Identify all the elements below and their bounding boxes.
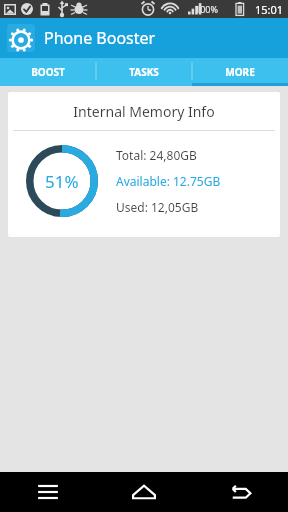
staticText: BOOST — [31, 65, 65, 79]
button[interactable]: Internal Memory Info — [8, 92, 280, 237]
staticText: TASKS — [129, 65, 159, 79]
staticText: MORE — [225, 65, 255, 79]
staticText: 15:01 — [255, 2, 284, 17]
staticText: Internal Memory Info — [8, 102, 280, 121]
button[interactable]: MORE — [192, 58, 288, 86]
button[interactable]: Back — [192, 472, 288, 512]
button[interactable]: Recent apps — [0, 472, 96, 512]
button[interactable]: TASKS — [96, 58, 192, 86]
staticText: Total: 24,80GB — [116, 147, 197, 163]
staticText: 51% — [45, 170, 79, 193]
other: Phone Booster app icon — [7, 24, 35, 52]
staticText: Phone Booster — [44, 27, 156, 49]
staticText: 100% — [195, 3, 218, 15]
staticText: Available: 12.75GB — [116, 173, 221, 189]
staticText: Used: 12,05GB — [116, 199, 199, 215]
button[interactable]: Home — [96, 472, 192, 512]
button[interactable]: BOOST — [0, 58, 96, 86]
